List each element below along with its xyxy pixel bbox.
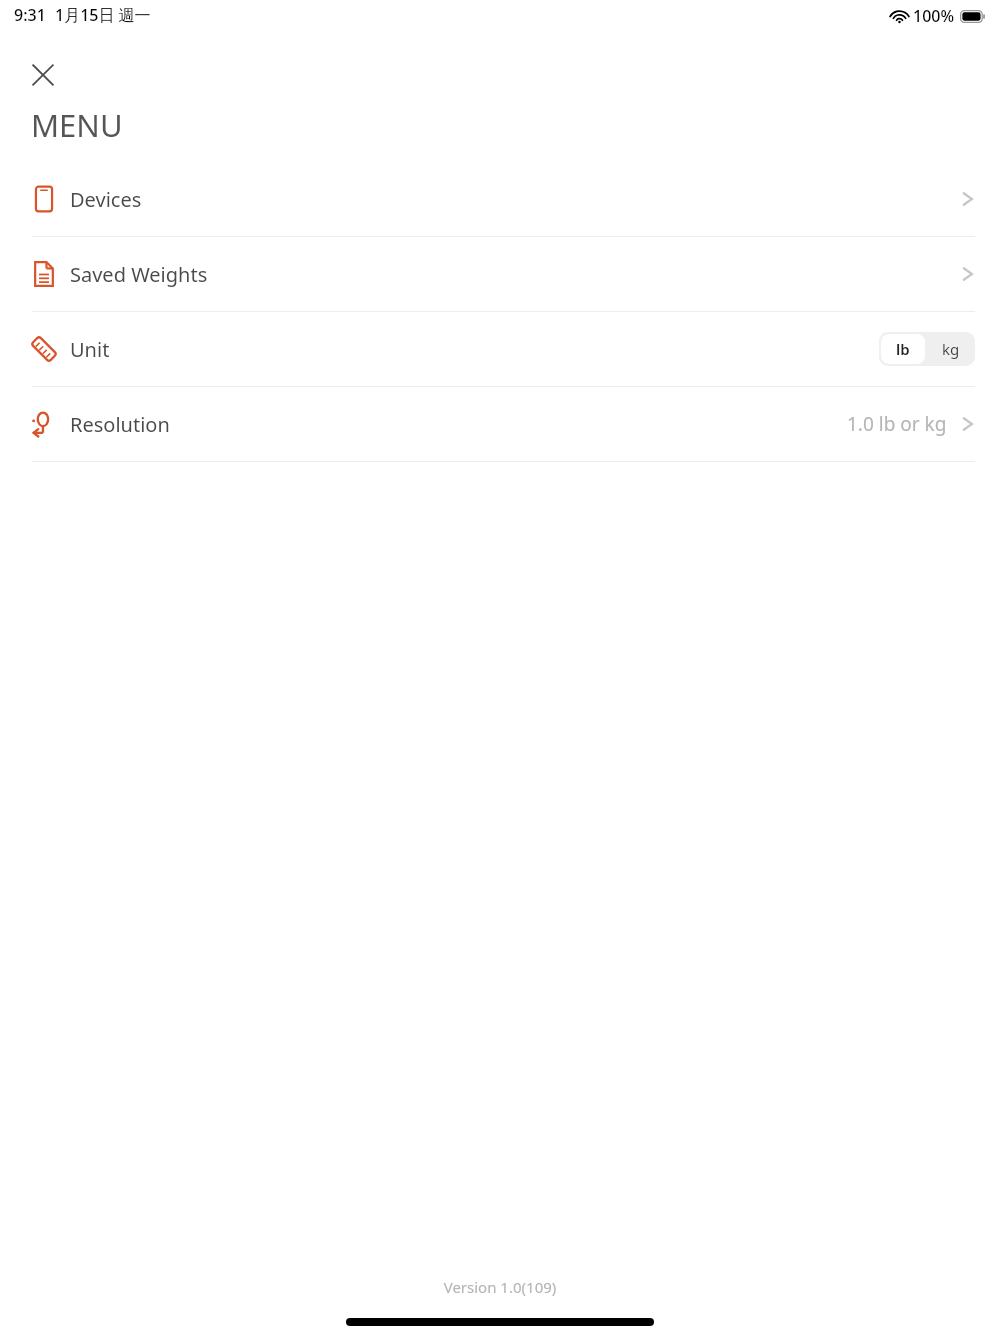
staticText: Resolution [70, 411, 170, 438]
button[interactable]: lb [881, 334, 925, 364]
staticText: 100% [913, 5, 955, 27]
staticText: Unit [70, 336, 110, 363]
staticText: Version 1.0(109) [0, 1277, 1000, 1297]
button[interactable]: Resolution [0, 387, 1000, 461]
button[interactable]: Close [20, 52, 66, 98]
staticText: Saved Weights [70, 261, 208, 288]
staticText: lb [896, 339, 910, 359]
staticText: 1月15日 週一 [55, 4, 151, 26]
button[interactable]: Saved Weights [0, 237, 1000, 311]
staticText: MENU [31, 104, 123, 146]
button[interactable]: Devices [0, 162, 1000, 236]
staticText: 1.0 lb or kg [847, 411, 947, 437]
staticText: 9:31 [14, 4, 46, 26]
staticText: kg [942, 339, 960, 359]
button[interactable]: kg [927, 332, 975, 366]
button[interactable]: Unit [0, 312, 1000, 386]
staticText: Devices [70, 186, 142, 213]
